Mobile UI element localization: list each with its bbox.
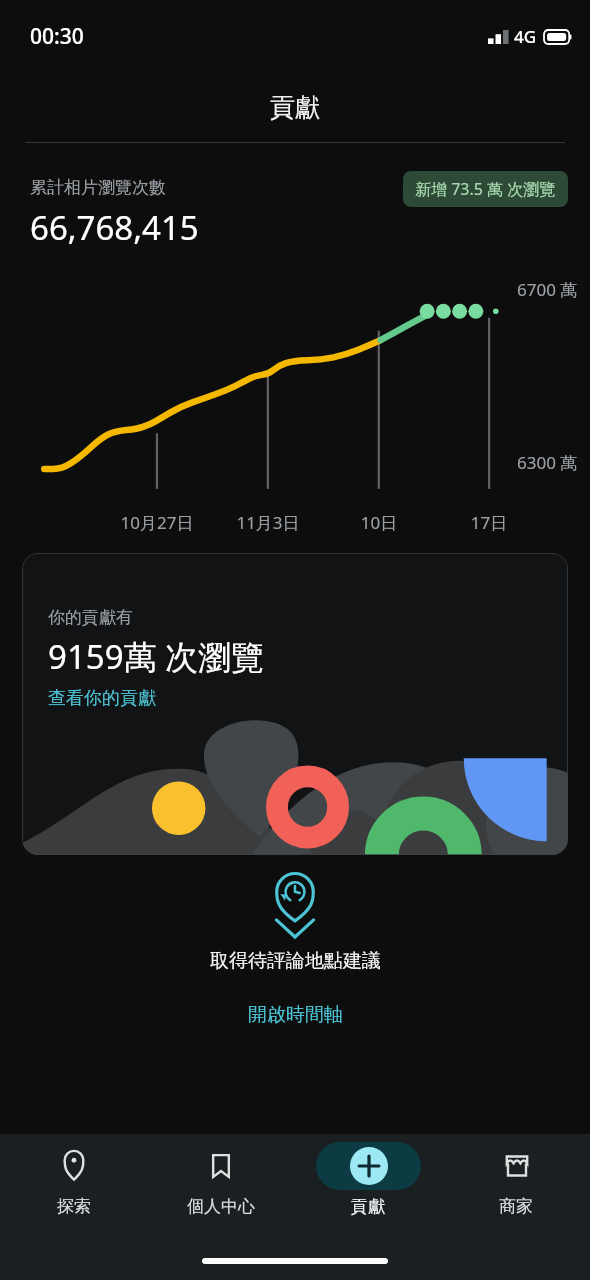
button[interactable]: 你的貢獻有 [22, 553, 568, 855]
staticText: 貢獻 [351, 1196, 385, 1217]
staticText: 6300 萬 [517, 451, 578, 474]
button[interactable]: 開啟時間軸 [238, 999, 353, 1031]
staticText: 6700 萬 [517, 278, 578, 301]
staticText: 貢獻 [270, 92, 320, 123]
staticText: 你的貢獻有 [48, 607, 133, 628]
staticText: 個人中心 [187, 1196, 255, 1217]
staticText: 10月27日 [112, 511, 202, 534]
other: 貢獻 [352, 1149, 386, 1183]
other: 個人中心 [204, 1149, 238, 1183]
button[interactable]: Pending place suggestions [264, 873, 326, 939]
other: 商家 [500, 1149, 534, 1183]
button[interactable]: 探索 [0, 1134, 147, 1242]
staticText: 探索 [57, 1196, 91, 1217]
staticText: 66,768,415 [30, 205, 199, 250]
staticText: 商家 [499, 1196, 533, 1217]
other: 探索 [57, 1149, 91, 1183]
staticText: 4G [514, 25, 537, 48]
staticText: 開啟時間軸 [248, 1003, 343, 1027]
staticText: 查看你的貢獻 [48, 687, 156, 710]
staticText: 10日 [334, 511, 424, 534]
button[interactable]: 查看你的貢獻 [48, 687, 156, 710]
button[interactable]: 個人中心 [147, 1134, 294, 1242]
staticText: 9159萬 次瀏覽 [48, 634, 265, 679]
staticText: 17日 [444, 511, 534, 534]
button[interactable]: 貢獻 [294, 1134, 442, 1242]
staticText: 取得待評論地點建議 [210, 949, 381, 973]
staticText: 新增 73.5 萬 次瀏覽 [415, 178, 556, 200]
staticText: 00:30 [30, 22, 84, 51]
staticText: 累計相片瀏覽次數 [30, 177, 166, 198]
button[interactable]: 新增 73.5 萬 次瀏覽 [403, 171, 568, 207]
staticText: 11月3日 [223, 511, 313, 534]
button[interactable]: 商家 [442, 1134, 590, 1242]
